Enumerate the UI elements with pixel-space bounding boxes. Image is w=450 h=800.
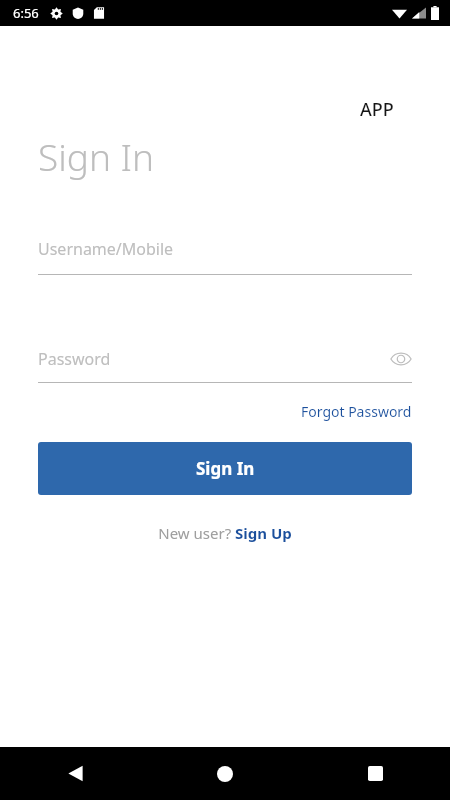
button[interactable]: APP [360, 97, 394, 122]
button[interactable]: Back [0, 747, 150, 800]
button[interactable]: Password [38, 348, 412, 383]
staticText: 6:56 [13, 4, 39, 22]
button[interactable]: Sign In [38, 442, 412, 495]
staticText: New user? Sign Up [158, 523, 292, 543]
staticText: Forgot Password [301, 402, 412, 421]
button[interactable]: New user? Sign Up [158, 523, 292, 543]
button[interactable]: Home [150, 747, 300, 800]
staticText: Sign In [196, 457, 255, 480]
button[interactable]: Username/Mobile [38, 238, 412, 275]
staticText: Username/Mobile [38, 238, 174, 260]
button[interactable]: Show password [390, 348, 412, 370]
button[interactable]: Forgot Password [301, 402, 412, 421]
staticText: APP [360, 97, 394, 122]
staticText: Password [38, 348, 390, 370]
staticText: Sign In [38, 131, 155, 181]
button[interactable]: Recent apps [300, 747, 450, 800]
